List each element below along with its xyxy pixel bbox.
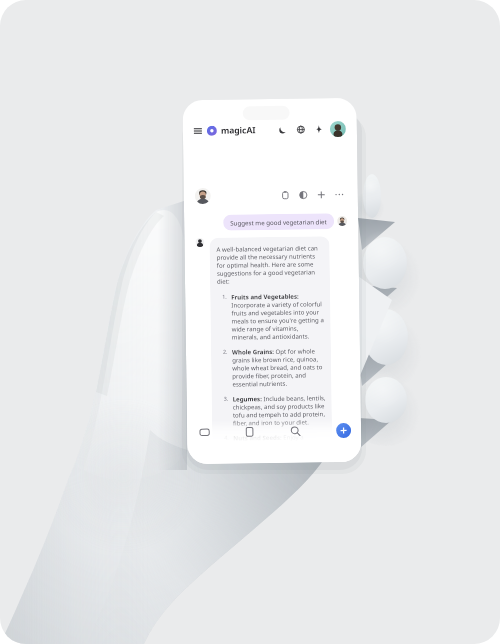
button[interactable]: New chat: [336, 423, 351, 438]
button[interactable]: Library: [244, 426, 255, 437]
staticText: Legumes: Include beans, lentils, chickpe…: [233, 393, 327, 426]
button[interactable]: You: [195, 188, 211, 204]
button[interactable]: Suggest me good vegetarian diet: [223, 213, 334, 231]
staticText: Suggest me good vegetarian diet: [230, 217, 327, 227]
staticText: Fruits and Vegetables: Incorporate a var…: [231, 291, 326, 341]
staticText: 3.: [224, 395, 233, 402]
button[interactable]: Language: [297, 125, 305, 134]
button[interactable]: Read aloud: [299, 190, 308, 200]
button[interactable]: Search: [290, 426, 301, 437]
staticText: 1.: [222, 293, 231, 300]
button[interactable]: Copy: [281, 191, 290, 200]
button[interactable]: Menu: [194, 127, 202, 135]
staticText: A well-balanced vegetarian diet can prov…: [216, 243, 325, 285]
staticText: Whole Grains: Opt for whole grains like …: [232, 346, 326, 388]
button[interactable]: Add: [317, 190, 326, 199]
staticText: Nuts and Seeds: Enjoy a handful of nuts: [233, 432, 327, 449]
button[interactable]: Upgrade: [315, 125, 323, 133]
button[interactable]: Dark mode: [279, 126, 287, 134]
staticText: magicAI: [221, 124, 256, 137]
button[interactable]: Profile: [330, 121, 346, 137]
staticText: 2.: [223, 348, 232, 355]
button[interactable]: Chats: [199, 427, 210, 438]
button[interactable]: More: [335, 190, 344, 199]
